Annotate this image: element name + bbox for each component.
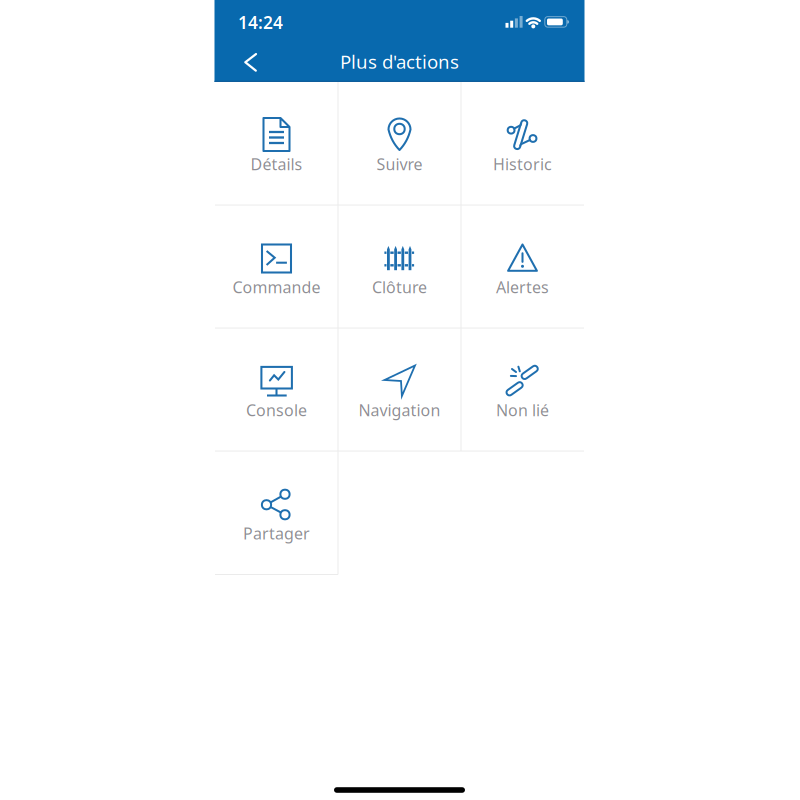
staticText: Commande [232,276,320,298]
staticText: Alertes [496,276,549,298]
staticText: Partager [243,523,310,544]
button[interactable]: Partager [215,451,338,574]
staticText: Console [246,399,307,421]
button[interactable]: Commande [215,205,338,328]
button[interactable]: Back [245,53,257,71]
button[interactable]: Détails [215,82,338,205]
button[interactable]: Historic [461,82,584,205]
button[interactable]: Navigation [338,328,461,451]
staticText: Clôture [372,276,427,298]
staticText: Non lié [496,399,549,421]
staticText: Historic [493,153,552,175]
staticText: Détails [250,153,302,175]
staticText: 14:24 [238,11,283,34]
button[interactable]: Console [215,328,338,451]
button[interactable]: Non lié [461,328,584,451]
button[interactable]: Clôture [338,205,461,328]
staticText: Navigation [358,399,440,421]
staticText: Plus d'actions [340,49,459,74]
staticText: Suivre [376,153,422,175]
button[interactable]: Suivre [338,82,461,205]
button[interactable]: Alertes [461,205,584,328]
